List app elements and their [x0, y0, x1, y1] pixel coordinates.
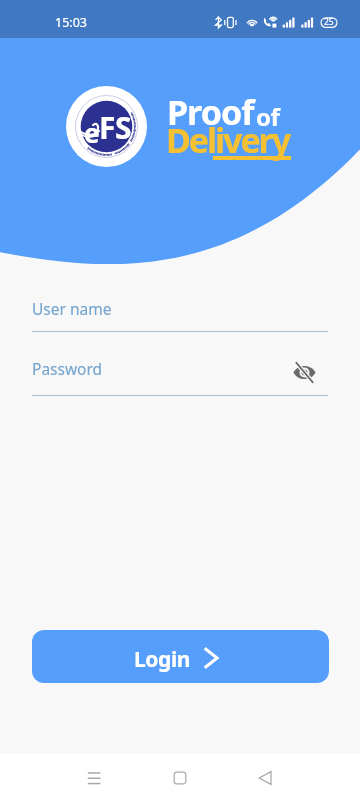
staticText: Proof	[167, 89, 254, 135]
staticText: of	[256, 100, 280, 133]
staticText: Password	[32, 358, 103, 379]
staticText: Login	[134, 645, 191, 674]
staticText: e	[84, 115, 100, 150]
button[interactable]: Login	[32, 630, 329, 683]
staticText: Delivery	[166, 117, 290, 163]
button[interactable]: Home	[157, 754, 203, 800]
staticText: 25	[324, 16, 334, 28]
staticText: FS	[99, 107, 131, 148]
button[interactable]: Back	[244, 754, 290, 800]
button[interactable]: Password	[32, 349, 328, 389]
staticText: 15:03	[55, 14, 87, 31]
staticText: User name	[32, 298, 112, 319]
button[interactable]: Recent apps	[70, 754, 116, 800]
button[interactable]: User name	[32, 289, 328, 329]
button[interactable]: Show password	[291, 359, 318, 386]
